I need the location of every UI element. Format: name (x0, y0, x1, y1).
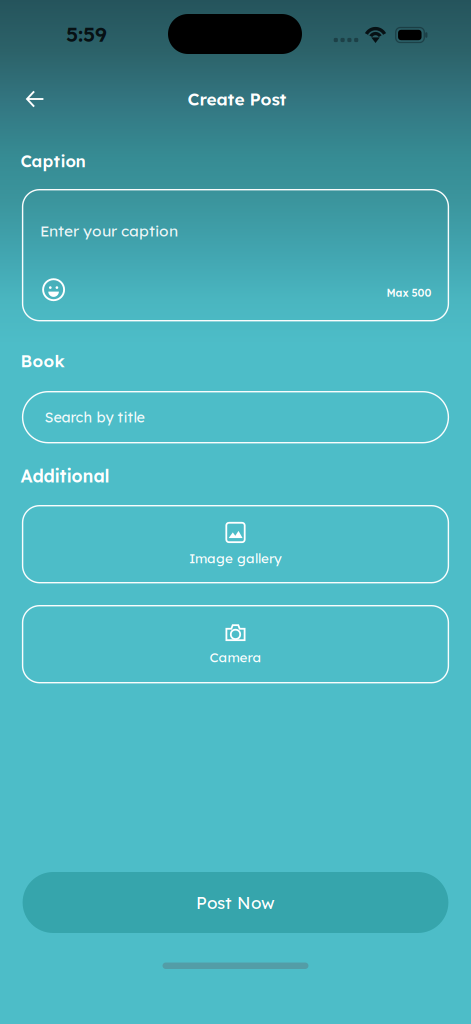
staticText: Caption (21, 151, 86, 171)
staticText: Create Post (187, 88, 286, 110)
button[interactable]: Back (12, 76, 58, 122)
staticText: Search by title (45, 408, 145, 426)
staticText: Image gallery (189, 550, 282, 567)
button[interactable]: Post Now (23, 872, 448, 933)
button[interactable]: Search by title (23, 392, 448, 443)
button[interactable]: Add emoji (36, 272, 72, 308)
staticText: Camera (209, 649, 261, 666)
button[interactable]: Camera (23, 606, 448, 683)
staticText: Enter your caption (40, 221, 178, 240)
staticText: Additional (21, 465, 110, 487)
staticText: 5:59 (66, 21, 107, 47)
staticText: Max 500 (386, 286, 431, 299)
staticText: Book (21, 350, 65, 371)
staticText: Post Now (196, 892, 275, 913)
button[interactable]: Image gallery (23, 506, 448, 583)
